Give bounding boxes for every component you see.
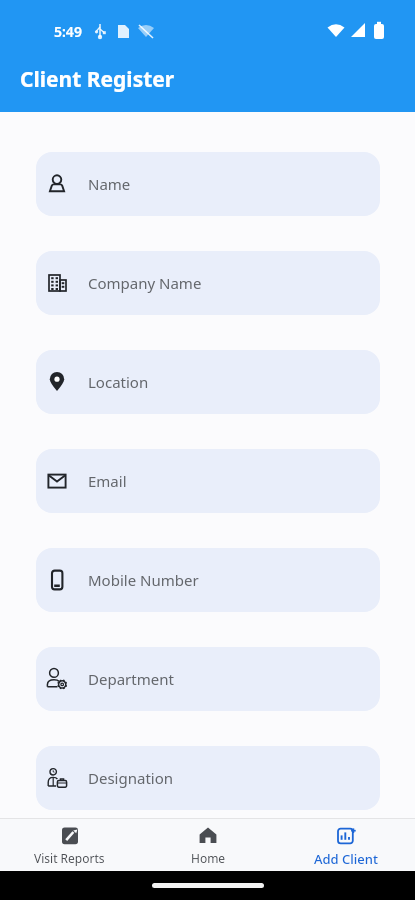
button[interactable]: Company Name (36, 251, 380, 315)
staticText: Mobile Number (88, 570, 199, 590)
staticText: Home (191, 850, 226, 866)
staticText: Location (88, 372, 149, 392)
button[interactable]: Department (36, 647, 380, 711)
staticText: Email (88, 471, 127, 491)
button[interactable]: Mobile Number (36, 548, 380, 612)
staticText: Designation (88, 768, 174, 788)
staticText: Client Register (20, 65, 175, 94)
button[interactable]: Home (139, 818, 277, 871)
staticText: Company Name (88, 273, 202, 293)
button[interactable]: Name (36, 152, 380, 216)
staticText: Name (88, 174, 131, 194)
staticText: Visit Reports (34, 850, 105, 866)
staticText: Add Client (314, 850, 378, 868)
button[interactable]: Visit Reports (0, 818, 139, 871)
button[interactable]: Add Client (277, 818, 415, 871)
button[interactable]: Location (36, 350, 380, 414)
button[interactable]: Designation (36, 746, 380, 810)
button[interactable]: Email (36, 449, 380, 513)
staticText: Department (88, 669, 174, 689)
staticText: 5:49 (54, 22, 82, 41)
